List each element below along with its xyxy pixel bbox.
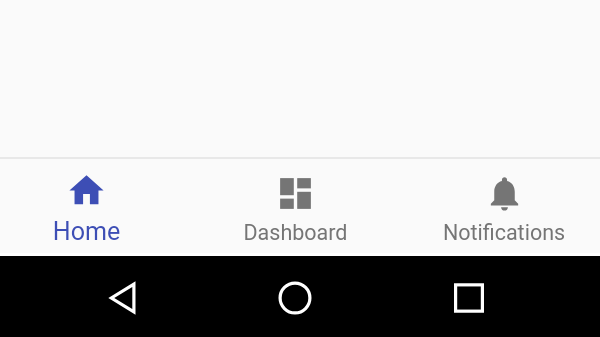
button[interactable]: Home screen bbox=[265, 268, 325, 328]
button[interactable]: Back bbox=[92, 268, 152, 328]
button[interactable]: Notifications bbox=[400, 159, 600, 256]
button[interactable]: Recent apps bbox=[439, 268, 499, 328]
staticText: Home bbox=[0, 217, 182, 246]
staticText: Notifications bbox=[404, 220, 600, 245]
button[interactable]: Dashboard bbox=[191, 159, 400, 256]
staticText: Dashboard bbox=[191, 220, 400, 245]
button[interactable]: Home bbox=[0, 159, 191, 256]
